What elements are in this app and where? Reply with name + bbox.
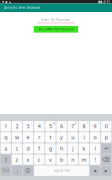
staticText: , — [16, 167, 17, 174]
staticText: Query the Drive Database — [3, 6, 40, 9]
staticText: o — [94, 134, 97, 141]
staticText: 9 — [94, 123, 97, 130]
staticText: v — [49, 156, 52, 163]
staticText: ?123 — [2, 169, 9, 172]
button[interactable]: p — [101, 132, 111, 142]
button[interactable]: ↵ — [101, 143, 111, 154]
staticText: m — [81, 156, 86, 163]
staticText: ▴ — [9, 0, 11, 4]
button[interactable]: English (US) — [34, 166, 89, 176]
staticText: a — [4, 145, 7, 152]
staticText: ) — [109, 122, 110, 125]
button[interactable]: 5 — [45, 121, 56, 131]
button[interactable]: m — [79, 154, 89, 165]
button[interactable]: 1 — [1, 121, 11, 131]
staticText: b — [60, 156, 63, 163]
staticText: c — [38, 156, 41, 163]
button[interactable]: i — [79, 132, 89, 142]
button[interactable]: g — [45, 143, 56, 154]
button[interactable]: k — [79, 143, 89, 154]
button[interactable]: q — [1, 132, 11, 142]
staticText: ▮▮ 4:31 — [98, 0, 110, 4]
button[interactable]: 2 — [12, 121, 22, 131]
staticText: % — [52, 122, 54, 125]
staticText: English (US) — [54, 169, 70, 172]
button[interactable]: z — [12, 154, 22, 165]
staticText: 0 — [105, 123, 108, 130]
staticText: 1 — [4, 123, 7, 130]
staticText: ☺ — [25, 168, 31, 174]
staticText: n — [71, 156, 74, 163]
button[interactable]: , — [12, 166, 22, 176]
button[interactable]: r — [34, 132, 44, 142]
staticText: ! — [95, 156, 96, 163]
staticText: • — [55, 115, 57, 120]
staticText: w — [15, 134, 19, 141]
button[interactable]: 4 — [34, 121, 44, 131]
staticText: z — [15, 156, 18, 163]
staticText: f — [38, 145, 40, 152]
button[interactable]: f — [34, 143, 44, 154]
staticText: ↵ — [104, 145, 108, 151]
button[interactable]: a — [1, 143, 11, 154]
staticText: y — [60, 134, 63, 141]
staticText: * — [87, 122, 88, 125]
staticText: 2 — [15, 123, 18, 130]
staticText: • — [31, 122, 32, 125]
button[interactable]: j — [68, 143, 78, 154]
button[interactable]: ☺ — [23, 166, 33, 176]
staticText: & — [75, 122, 77, 125]
staticText: ~ — [41, 122, 43, 125]
button[interactable]: ALL COMBO TEST RESULTS LIST — [34, 26, 78, 33]
button[interactable]: d — [23, 143, 33, 154]
staticText: ⌫ — [102, 157, 110, 163]
staticText: t — [49, 134, 51, 141]
button[interactable]: 9 — [90, 121, 100, 131]
staticText: ^ — [63, 122, 65, 125]
button[interactable]: e — [23, 132, 33, 142]
staticText: ◂ — [94, 168, 97, 174]
staticText: 6 — [60, 123, 63, 130]
button[interactable]: ! — [90, 154, 100, 165]
button[interactable]: o — [90, 132, 100, 142]
staticText: Enter ID Number — [41, 17, 71, 22]
button[interactable]: 7 — [68, 121, 78, 131]
button[interactable]: 6 — [56, 121, 67, 131]
button[interactable]: t — [45, 132, 56, 142]
staticText: j — [72, 145, 73, 152]
button[interactable]: ⇧ — [1, 154, 11, 165]
staticText: ▸ — [105, 168, 108, 174]
button[interactable]: 3 — [23, 121, 33, 131]
button[interactable]: n — [68, 154, 78, 165]
button[interactable]: 0 — [101, 121, 111, 131]
button[interactable]: y — [56, 132, 67, 142]
button[interactable]: x — [23, 154, 33, 165]
button[interactable]: 8 — [79, 121, 89, 131]
staticText: ▪ — [5, 0, 8, 4]
button[interactable]: h — [56, 143, 67, 154]
button[interactable]: b — [56, 154, 67, 165]
button[interactable]: s — [12, 143, 22, 154]
staticText: l — [95, 145, 96, 152]
staticText: 8 — [82, 123, 85, 130]
staticText: p — [105, 134, 108, 141]
staticText: s — [15, 145, 18, 152]
button[interactable]: ?123 — [1, 166, 11, 176]
staticText: 4 — [38, 123, 41, 130]
button[interactable]: v — [45, 154, 56, 165]
button[interactable]: c — [34, 154, 44, 165]
staticText: 3 — [27, 123, 30, 130]
staticText: ' — [9, 122, 10, 125]
staticText: " — [20, 122, 21, 125]
staticText: ( — [98, 122, 99, 125]
button[interactable]: l — [90, 143, 100, 154]
button[interactable]: w — [12, 132, 22, 142]
button[interactable]: u — [68, 132, 78, 142]
button[interactable]: ⌫ — [101, 154, 111, 165]
staticText: d — [27, 145, 30, 152]
button[interactable]: ◂ — [90, 166, 100, 176]
staticText: ALL COMBO TEST RESULTS LIST — [38, 27, 73, 31]
button[interactable]: ▸ — [101, 166, 111, 176]
staticText: g — [49, 145, 52, 152]
staticText: ⇧ — [4, 157, 8, 163]
